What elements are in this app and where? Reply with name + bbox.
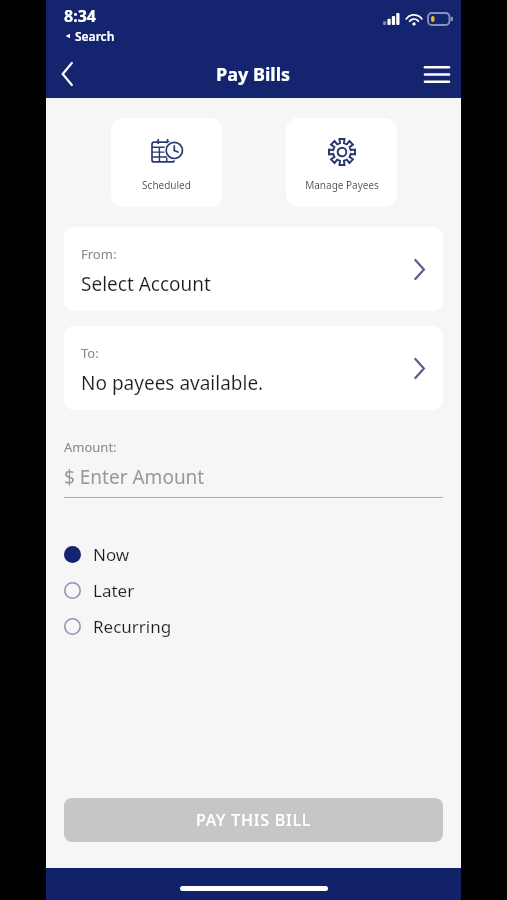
button[interactable]: Scheduled [111, 118, 222, 207]
staticText: To: [81, 344, 99, 362]
staticText: Search [75, 28, 115, 44]
staticText: 8:34 [64, 5, 96, 27]
staticText: No payees available. [81, 370, 264, 396]
staticText: Now [93, 543, 130, 566]
button[interactable]: PAY THIS BILL [64, 798, 443, 842]
button[interactable]: Manage Payees [286, 118, 397, 207]
staticText: Amount: [64, 438, 117, 456]
staticText: Scheduled [142, 178, 191, 192]
button[interactable]: From: [64, 227, 443, 311]
button[interactable]: To: [64, 326, 443, 410]
button[interactable]: Back [46, 52, 90, 96]
staticText: Manage Payees [305, 178, 379, 192]
staticText: Recurring [93, 615, 172, 638]
button[interactable]: Later [46, 572, 461, 608]
button[interactable]: Menu [413, 50, 461, 98]
staticText: $ Enter Amount [64, 464, 205, 490]
staticText: PAY THIS BILL [196, 809, 312, 831]
button[interactable]: Recurring [46, 608, 461, 644]
staticText: Pay Bills [216, 62, 291, 87]
staticText: Later [93, 579, 135, 602]
staticText: Select Account [81, 271, 211, 297]
staticText: From: [81, 245, 117, 263]
button[interactable]: Now [46, 536, 461, 572]
